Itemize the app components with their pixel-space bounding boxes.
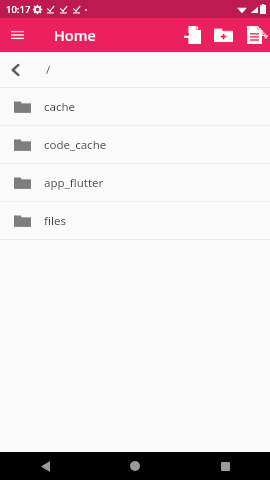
staticText: 10:17	[6, 3, 31, 16]
button[interactable]: /	[46, 52, 51, 87]
button[interactable]: Home	[90, 452, 180, 480]
button[interactable]: code_cache	[0, 126, 270, 163]
button[interactable]: app_flutter	[0, 164, 270, 201]
button[interactable]: cache	[0, 88, 270, 125]
button[interactable]: Recent apps	[180, 452, 270, 480]
button[interactable]: Import file	[177, 18, 208, 52]
staticText: Home	[54, 25, 96, 45]
staticText: cache	[44, 99, 76, 115]
button[interactable]: Create new file	[239, 18, 270, 52]
staticText: files	[44, 213, 66, 229]
staticText: DEBUG	[254, 24, 270, 40]
button[interactable]: Navigate up	[0, 52, 30, 87]
button[interactable]: Create new folder	[208, 18, 239, 52]
button[interactable]: Back	[0, 452, 90, 480]
button[interactable]: Open navigation menu	[0, 18, 34, 52]
staticText: app_flutter	[44, 175, 104, 191]
staticText: code_cache	[44, 137, 107, 153]
staticText: /	[46, 62, 51, 77]
button[interactable]: files	[0, 202, 270, 239]
